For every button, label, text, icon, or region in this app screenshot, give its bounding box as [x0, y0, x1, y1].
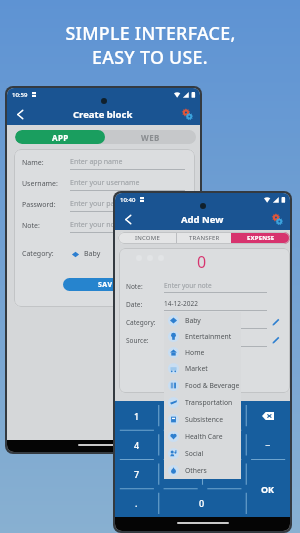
button[interactable]: 6: [202, 430, 246, 459]
button[interactable]: Edit: [271, 335, 281, 345]
button[interactable]: SAVE: [63, 278, 151, 291]
staticText: Market: [185, 364, 208, 373]
staticText: Enter app name: [70, 157, 123, 167]
button[interactable]: Others: [164, 462, 241, 479]
button[interactable]: Market: [164, 360, 241, 377]
staticText: 1: [134, 410, 140, 422]
button[interactable]: Social: [164, 445, 241, 462]
button[interactable]: OK: [246, 459, 290, 518]
staticText: Create block: [73, 108, 133, 121]
staticText: 2: [177, 410, 183, 422]
button[interactable]: Baby: [164, 312, 241, 328]
button[interactable]: Back: [11, 105, 29, 123]
button[interactable]: Back: [119, 210, 137, 228]
staticText: Enter your username: [70, 178, 140, 188]
staticText: 4: [134, 439, 140, 451]
staticText: SAVE: [98, 280, 117, 290]
button[interactable]: Health Care: [164, 428, 241, 445]
staticText: Name:: [22, 158, 44, 168]
staticText: Enter your password: [70, 199, 138, 209]
button[interactable]: Edit: [271, 317, 281, 327]
staticText: SIMPLE INTERFACE,: [65, 21, 236, 45]
button[interactable]: 0: [158, 488, 246, 517]
staticText: Transportation: [185, 398, 233, 407]
staticText: Baby: [84, 249, 101, 259]
staticText: −: [265, 439, 271, 451]
button[interactable]: 5: [158, 430, 202, 459]
staticText: Social: [185, 449, 204, 458]
staticText: OK: [261, 483, 275, 495]
staticText: 0: [199, 497, 205, 509]
button[interactable]: Settings: [178, 105, 196, 123]
staticText: Home: [185, 348, 205, 357]
staticText: 0: [197, 251, 207, 273]
staticText: Date:: [126, 300, 143, 309]
staticText: Add New: [181, 213, 224, 226]
button[interactable]: Transportation: [164, 394, 241, 411]
button[interactable]: Subsistence: [164, 411, 241, 428]
button[interactable]: 8: [158, 459, 202, 488]
button[interactable]: Backspace: [246, 401, 290, 430]
staticText: Note:: [22, 221, 40, 231]
staticText: 5: [177, 439, 183, 451]
button[interactable]: INCOME: [118, 232, 176, 244]
button[interactable]: 7: [115, 459, 158, 488]
staticText: EASY TO USE.: [92, 45, 208, 69]
staticText: APP: [52, 132, 69, 143]
staticText: EXPENSE: [247, 234, 275, 242]
staticText: 9: [221, 468, 227, 480]
staticText: Others: [185, 466, 207, 475]
staticText: Subsistence: [185, 415, 223, 424]
button[interactable]: APP: [15, 130, 105, 144]
staticText: 10:40: [120, 196, 136, 204]
staticText: Username:: [22, 179, 58, 189]
button[interactable]: TRANSFER: [177, 232, 231, 244]
staticText: Category:: [126, 318, 156, 327]
staticText: TRANSFER: [189, 234, 220, 242]
button[interactable]: 3: [202, 401, 246, 430]
staticText: Enter your note: [164, 281, 212, 290]
button[interactable]: Food & Beverage: [164, 377, 241, 394]
button[interactable]: 4: [115, 430, 158, 459]
button[interactable]: 2: [158, 401, 202, 430]
staticText: Cash: [164, 335, 179, 344]
staticText: Entertainment: [185, 332, 232, 341]
staticText: 7: [134, 468, 140, 480]
button[interactable]: EXPENSE: [231, 232, 290, 244]
staticText: Health Care: [185, 432, 223, 441]
button[interactable]: Entertainment: [164, 328, 241, 344]
staticText: 3: [221, 410, 227, 422]
button[interactable]: 1: [115, 401, 158, 430]
button[interactable]: WEB: [105, 130, 196, 144]
button[interactable]: 9: [202, 459, 246, 488]
staticText: Baby: [185, 316, 201, 325]
button[interactable]: Settings: [268, 210, 286, 228]
staticText: 10:59: [12, 91, 28, 99]
button[interactable]: Minus: [246, 430, 290, 459]
staticText: Source:: [126, 336, 149, 345]
staticText: 8: [177, 468, 183, 480]
button[interactable]: Home: [164, 344, 241, 360]
staticText: WEB: [141, 132, 160, 143]
staticText: 14-12-2022: [164, 299, 198, 308]
staticText: Note:: [126, 282, 143, 291]
staticText: INCOME: [135, 234, 160, 242]
staticText: Category:: [22, 249, 54, 259]
staticText: Baby: [164, 317, 180, 326]
staticText: .: [135, 497, 138, 509]
staticText: Enter your note: [70, 220, 122, 230]
staticText: Food & Beverage: [185, 381, 240, 390]
button[interactable]: .: [115, 488, 158, 517]
staticText: Password:: [22, 200, 56, 210]
